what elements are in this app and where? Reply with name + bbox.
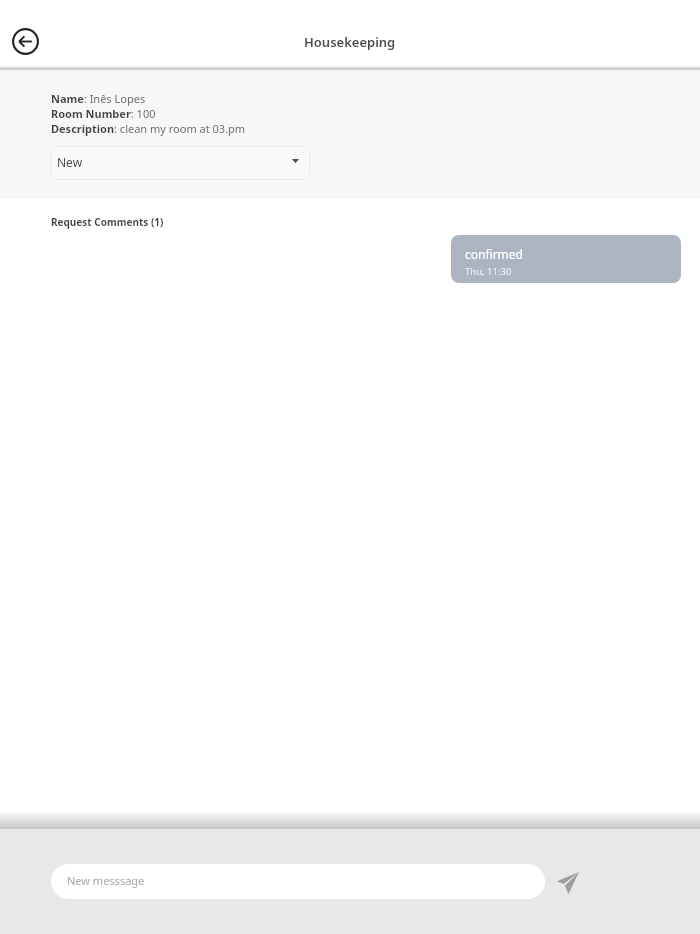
staticText: Description: clean my room at 03.pm — [51, 121, 246, 136]
button[interactable]: New messsage — [51, 864, 545, 899]
staticText: Room Number: 100 — [51, 106, 156, 121]
button[interactable]: Send — [552, 867, 584, 899]
staticText: Request Comments (1) — [51, 215, 164, 229]
staticText: New messsage — [67, 873, 145, 888]
staticText: Thu, 11:30 — [465, 265, 512, 278]
staticText: New — [57, 154, 83, 170]
staticText: confirmed — [465, 246, 523, 262]
button[interactable]: New — [51, 146, 310, 180]
staticText: Housekeeping — [304, 33, 396, 51]
staticText: Name: Inês Lopes — [51, 91, 146, 106]
button[interactable]: Back — [11, 27, 39, 55]
